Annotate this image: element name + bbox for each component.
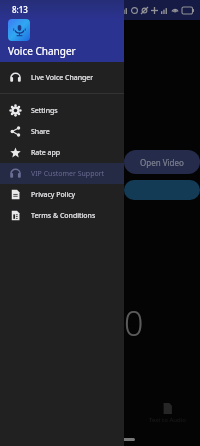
staticText: 8:13 — [12, 4, 28, 15]
staticText: Rate app — [31, 148, 61, 158]
staticText: Text to Audio — [149, 416, 186, 424]
button[interactable]: Share — [0, 121, 124, 142]
staticText: Live Voice Changer — [31, 73, 94, 83]
staticText: Settings — [31, 106, 58, 116]
staticText: 0 — [124, 300, 144, 346]
button[interactable]: VIP Customer Support — [0, 163, 124, 184]
staticText: Privacy Policy — [31, 190, 76, 200]
button[interactable]: Text to Audio — [149, 403, 186, 424]
button[interactable]: Privacy Policy — [0, 184, 124, 205]
button[interactable]: Rate app — [0, 142, 124, 163]
staticText: Open Video — [140, 157, 184, 168]
button[interactable] — [124, 180, 200, 200]
staticText: Share — [31, 127, 50, 137]
staticText: VIP Customer Support — [31, 169, 105, 179]
button[interactable]: Live Voice Changer — [0, 67, 124, 88]
button[interactable]: Terms & Conditions — [0, 205, 124, 226]
staticText: Terms & Conditions — [31, 211, 96, 221]
button[interactable]: Settings — [0, 100, 124, 121]
button[interactable]: Open Video — [124, 150, 200, 174]
staticText: Voice Changer — [8, 44, 76, 58]
